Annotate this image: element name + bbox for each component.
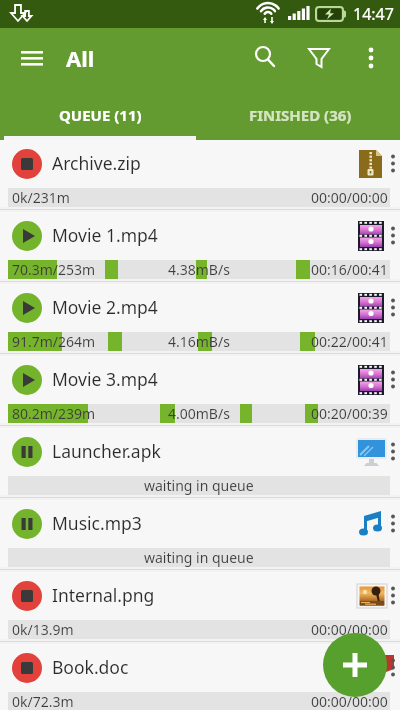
staticText: 80.2m/239m — [12, 404, 96, 423]
button[interactable]: Movie 1.mp4 — [0, 212, 400, 284]
staticText: Music.mp3 — [52, 511, 142, 535]
button[interactable]: FINISHED (36) — [200, 90, 400, 140]
staticText: 00:20/00:39 — [311, 404, 388, 423]
staticText: Movie 2.mp4 — [52, 295, 158, 319]
staticText: 00:00/00:00 — [311, 620, 388, 639]
staticText: waiting in queue — [144, 548, 254, 567]
button[interactable] — [246, 39, 284, 77]
staticText: waiting in queue — [144, 476, 254, 495]
staticText: 4.38mB/s — [168, 260, 230, 279]
staticText: 0k/231m — [12, 188, 70, 207]
staticText: 70.3m/253m — [12, 260, 96, 279]
staticText: 00:00/00:00 — [311, 188, 388, 207]
button[interactable]: Movie 3.mp4 — [0, 356, 400, 428]
staticText: FINISHED (36) — [249, 105, 352, 125]
staticText: 14:47 — [353, 3, 394, 25]
staticText: Internal.png — [52, 583, 155, 607]
staticText: Launcher.apk — [52, 439, 161, 463]
staticText: 91.7m/264m — [12, 332, 96, 351]
button[interactable] — [10, 44, 54, 76]
staticText: 00:16/00:41 — [311, 260, 388, 279]
button[interactable]: Internal.png — [0, 572, 400, 644]
staticText: Movie 1.mp4 — [52, 223, 158, 247]
button[interactable]: QUEUE (11) — [0, 90, 200, 140]
button[interactable] — [352, 39, 390, 77]
button[interactable]: Launcher.apk — [0, 428, 400, 500]
staticText: Archive.zip — [52, 151, 141, 175]
staticText: 0k/72.3m — [12, 692, 74, 710]
button[interactable]: Movie 2.mp4 — [0, 284, 400, 356]
staticText: 00:22/00:41 — [311, 332, 388, 351]
staticText: QUEUE (11) — [59, 105, 142, 125]
button[interactable] — [323, 633, 387, 697]
button[interactable]: Archive.zip — [0, 140, 400, 212]
button[interactable]: Music.mp3 — [0, 500, 400, 572]
staticText: 4.00mB/s — [168, 404, 230, 423]
button[interactable]: Book.doc — [0, 644, 400, 710]
button[interactable] — [299, 39, 339, 77]
staticText: All — [66, 43, 95, 73]
staticText: 4.16mB/s — [168, 332, 230, 351]
staticText: Book.doc — [52, 655, 129, 679]
staticText: 00:00/00:00 — [311, 692, 388, 710]
staticText: 0k/13.9m — [12, 620, 74, 639]
staticText: Movie 3.mp4 — [52, 367, 158, 391]
